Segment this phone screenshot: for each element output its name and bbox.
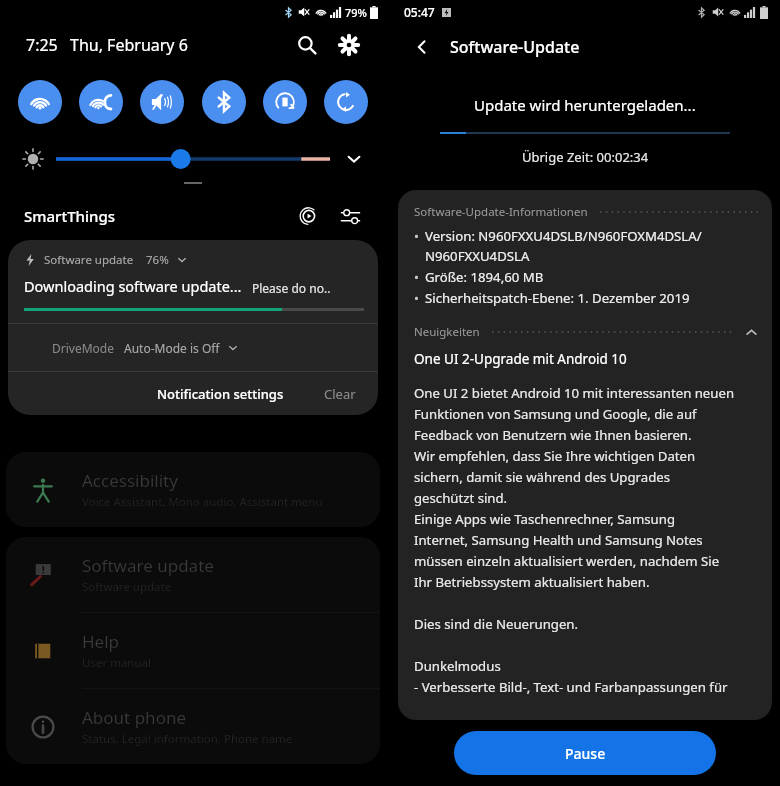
button[interactable]: Back	[404, 29, 440, 65]
staticText: •	[414, 227, 419, 245]
button[interactable]	[56, 147, 330, 171]
button[interactable]: Search	[290, 28, 324, 62]
button[interactable]: DriveMode	[8, 324, 378, 371]
staticText: Accessibility	[82, 469, 178, 492]
button[interactable]: Sound mode	[140, 80, 184, 124]
button[interactable]: Scan devices	[294, 202, 322, 230]
staticText: SmartThings	[24, 206, 116, 226]
staticText: Update wird heruntergeladen...	[474, 95, 696, 115]
staticText: About phone	[82, 706, 187, 729]
button[interactable]: Wi-Fi calling	[79, 80, 123, 124]
button[interactable]: Mobile data	[263, 80, 307, 124]
button[interactable]: Notification settings	[147, 379, 294, 409]
button[interactable]: Neuigkeiten	[414, 324, 758, 340]
button[interactable]: Clear	[316, 379, 364, 409]
staticText: Auto-Mode is Off	[124, 340, 220, 356]
button[interactable]: Bluetooth	[202, 80, 246, 124]
staticText: Version: N960FXXU4DSLB/N960FOXM4DSLA/ N9…	[425, 227, 702, 265]
staticText: Software-Update	[450, 36, 580, 58]
staticText: Please do no..	[252, 280, 331, 296]
button[interactable]: Accessibility	[6, 452, 380, 527]
staticText: 76%	[146, 252, 169, 268]
staticText: Help	[82, 630, 120, 653]
staticText: Software update	[82, 554, 214, 577]
staticText: Thu, February 6	[70, 34, 188, 56]
staticText: 05:47	[404, 4, 435, 20]
staticText: One UI 2 bietet Android 10 mit interessa…	[414, 384, 735, 696]
staticText: DriveMode	[52, 340, 114, 356]
staticText: Downloading software update...	[24, 276, 242, 296]
staticText: User manual	[82, 655, 151, 671]
button[interactable]: Settings	[332, 28, 366, 62]
button[interactable]: Wi-Fi	[18, 80, 62, 124]
staticText: Neuigkeiten	[414, 324, 480, 340]
staticText: Übrige Zeit: 00:02:34	[522, 148, 649, 166]
staticText: One UI 2-Upgrade mit Android 10	[414, 350, 627, 368]
button[interactable]: Software update	[6, 537, 380, 612]
button[interactable]: Pause	[454, 731, 716, 775]
staticText: 79%	[345, 5, 367, 20]
button[interactable]: Help	[6, 613, 380, 688]
staticText: Status, Legal information, Phone name	[82, 731, 293, 747]
staticText: Software update	[82, 579, 172, 595]
staticText: •	[414, 268, 419, 286]
staticText: Software-Update-Informationen	[414, 204, 588, 220]
staticText: 7:25	[26, 34, 58, 56]
button[interactable]: Auto rotate	[324, 80, 368, 124]
button[interactable]: Software update	[8, 240, 378, 323]
button[interactable]: Expand	[340, 145, 368, 173]
staticText: Voice Assistant, Mono audio, Assistant m…	[82, 494, 323, 510]
staticText: Sicherheitspatch-Ebene: 1. Dezember 2019	[425, 289, 690, 307]
staticText: Größe: 1894,60 MB	[425, 268, 544, 286]
button[interactable]: Software-Update-Informationen	[414, 204, 758, 220]
staticText: Pause	[565, 744, 606, 763]
staticText: Clear	[324, 385, 356, 403]
staticText: Notification settings	[157, 385, 284, 403]
button[interactable]: Tune	[336, 202, 364, 230]
button[interactable]: About phone	[6, 689, 380, 764]
staticText: Software update	[44, 252, 134, 268]
staticText: •	[414, 289, 419, 307]
